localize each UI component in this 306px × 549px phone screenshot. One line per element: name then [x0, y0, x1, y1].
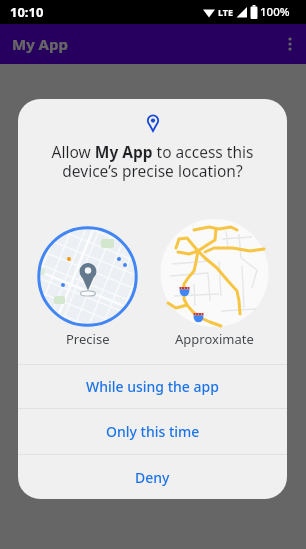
staticText: Allow My App to access this device’s pre…	[18, 141, 287, 181]
button[interactable]: Deny	[18, 455, 287, 499]
staticText: Approximate	[175, 330, 254, 348]
staticText: Only this time	[106, 422, 200, 441]
staticText: While using the app	[86, 377, 219, 396]
staticText: 10:10	[10, 3, 44, 21]
button[interactable]	[164, 226, 265, 327]
staticText: Precise	[66, 330, 110, 348]
button[interactable]: Only this time	[18, 409, 287, 454]
button[interactable]: While using the app	[18, 365, 287, 408]
staticText: LTE	[218, 6, 234, 18]
button[interactable]	[288, 37, 292, 51]
staticText: Deny	[135, 468, 170, 487]
staticText: 100%	[260, 4, 290, 20]
button[interactable]	[37, 226, 138, 327]
staticText: My App	[12, 34, 68, 54]
